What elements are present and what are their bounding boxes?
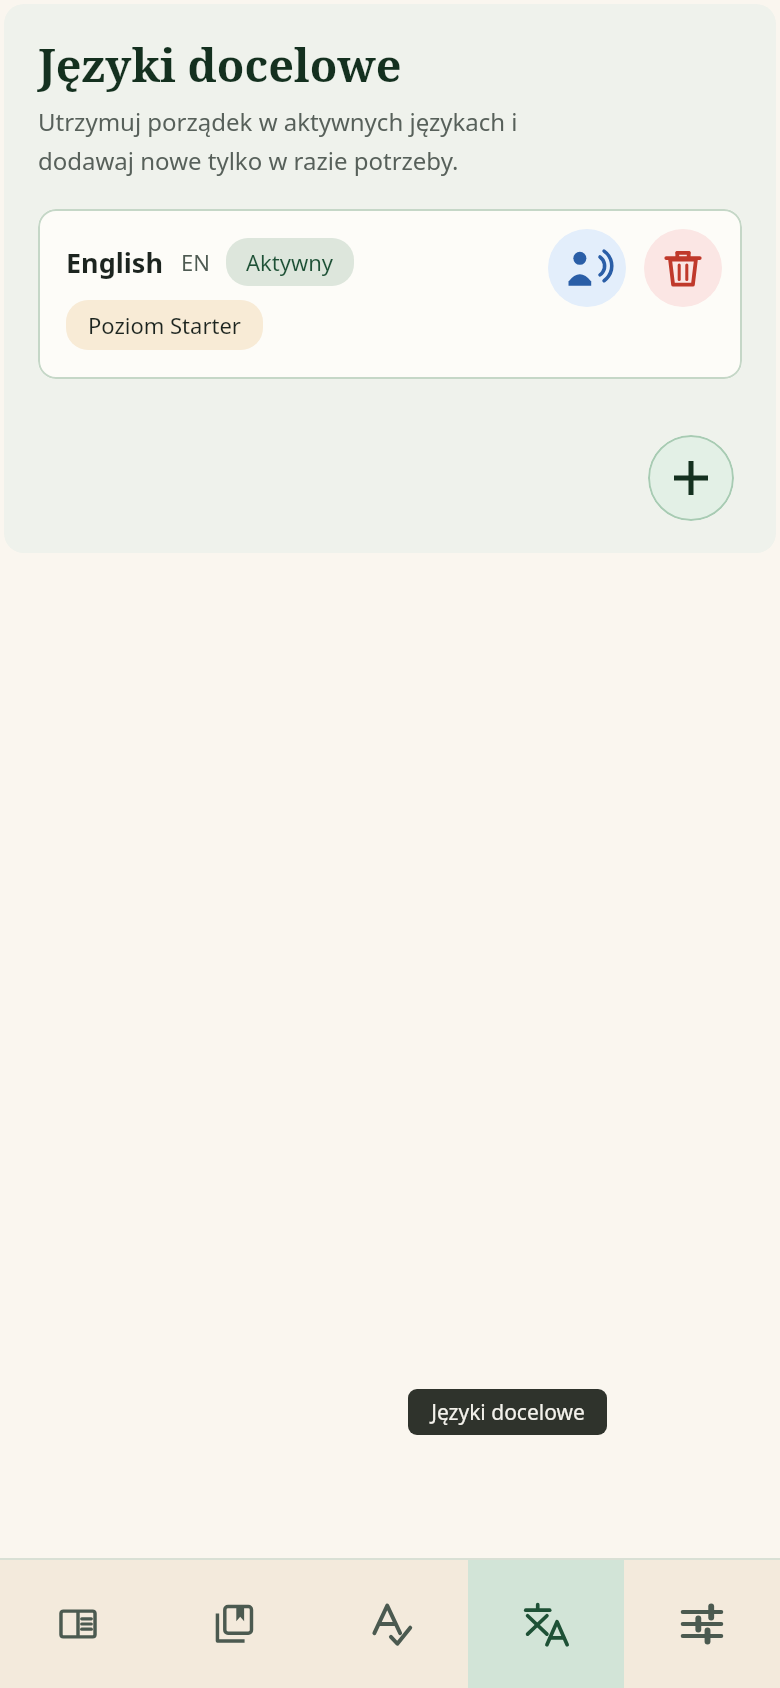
button[interactable]: Add language <box>648 435 734 521</box>
button[interactable]: Delete <box>644 229 722 307</box>
button[interactable]: English <box>38 209 742 379</box>
staticText: Języki docelowe <box>38 34 402 95</box>
staticText: Poziom Starter <box>88 310 241 340</box>
button[interactable]: Settings <box>624 1560 780 1688</box>
staticText: Utrzymuj porządek w aktywnych językach i… <box>38 105 518 177</box>
staticText: Języki docelowe <box>431 1398 585 1427</box>
button[interactable]: Library <box>156 1560 312 1688</box>
button[interactable]: Target languages <box>468 1560 624 1688</box>
button[interactable]: Reader <box>0 1560 156 1688</box>
staticText: Aktywny <box>246 247 334 277</box>
staticText: EN <box>181 247 210 277</box>
button[interactable]: Spelling <box>312 1560 468 1688</box>
staticText: English <box>66 244 163 281</box>
button[interactable]: Pronounce <box>548 229 626 307</box>
